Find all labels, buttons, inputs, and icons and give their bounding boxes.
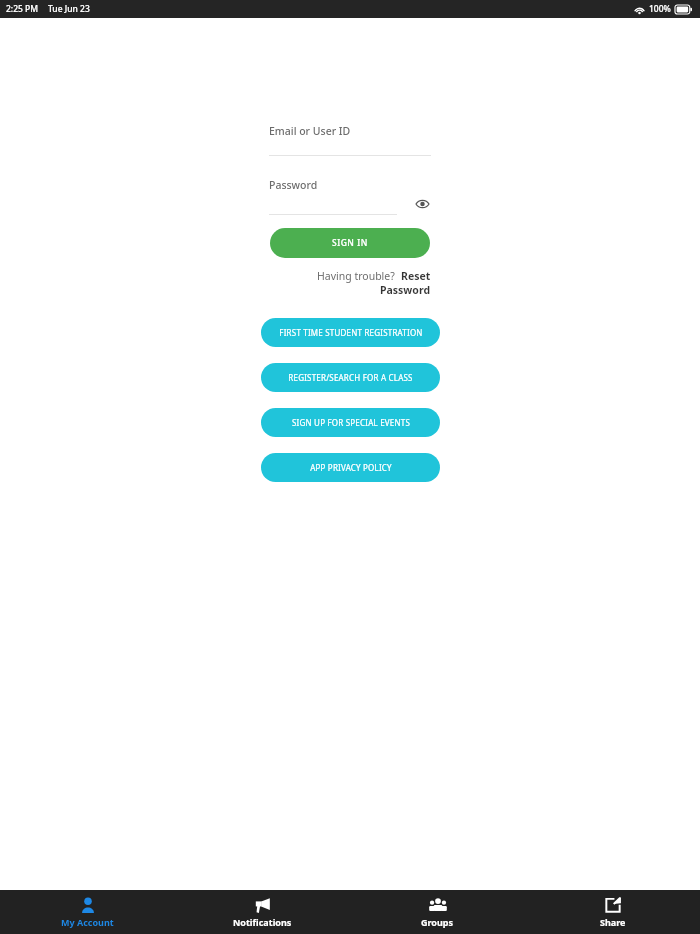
staticText: 100%	[649, 3, 671, 15]
staticText: Share	[600, 916, 626, 928]
button[interactable]: Password	[380, 283, 431, 297]
button[interactable]: REGISTER/SEARCH FOR A CLASS	[261, 363, 440, 392]
button[interactable]: APP PRIVACY POLICY	[261, 453, 440, 482]
button[interactable]: Share	[525, 890, 700, 934]
staticText: Tue Jun 23	[48, 3, 90, 15]
staticText: Password	[269, 178, 318, 192]
staticText: Email or User ID	[269, 124, 351, 138]
staticText: Groups	[421, 916, 454, 928]
button[interactable]: Groups	[350, 890, 525, 934]
button[interactable]: My Account	[0, 890, 175, 934]
staticText: Notifications	[233, 916, 292, 928]
staticText: FIRST TIME STUDENT REGISTRATION	[279, 327, 423, 338]
staticText: SIGN IN	[332, 237, 368, 249]
staticText: My Account	[61, 916, 114, 928]
button[interactable]: SIGN IN	[270, 228, 430, 258]
staticText: SIGN UP FOR SPECIAL EVENTS	[292, 417, 410, 428]
staticText: 2:25 PM	[6, 3, 39, 15]
staticText: APP PRIVACY POLICY	[310, 462, 392, 473]
button[interactable]: Notifications	[175, 890, 350, 934]
button[interactable]: FIRST TIME STUDENT REGISTRATION	[261, 318, 440, 347]
button[interactable]: Show password	[413, 195, 431, 213]
staticText: REGISTER/SEARCH FOR A CLASS	[288, 372, 413, 383]
button[interactable]: Reset	[401, 269, 431, 283]
staticText: Having trouble?	[317, 269, 401, 283]
button[interactable]: SIGN UP FOR SPECIAL EVENTS	[261, 408, 440, 437]
